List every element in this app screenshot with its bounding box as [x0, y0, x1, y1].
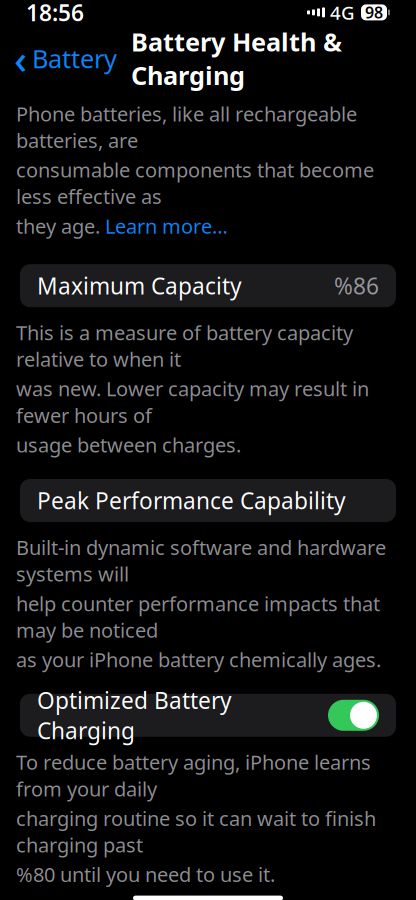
- staticText: %86: [334, 271, 379, 301]
- staticText: was new. Lower capacity may result in fe…: [16, 375, 369, 428]
- staticText: charging routine so it can wait to finis…: [16, 805, 376, 858]
- staticText: Battery: [32, 42, 117, 75]
- staticText: 4G: [330, 0, 355, 25]
- staticText: To reduce battery aging, iPhone learns f…: [16, 749, 371, 802]
- staticText: Learn more…: [105, 213, 228, 239]
- staticText: Peak Performance Capability: [37, 485, 346, 515]
- staticText: usage between charges.: [16, 431, 241, 458]
- button[interactable]: Learn more…: [105, 213, 228, 239]
- staticText: as your iPhone battery chemically ages.: [16, 646, 381, 673]
- staticText: 18:56: [26, 0, 84, 27]
- staticText: Maximum Capacity: [37, 271, 242, 301]
- button[interactable]: Peak Performance Capability: [20, 479, 396, 522]
- staticText: consumable components that become less e…: [16, 156, 374, 210]
- staticText: Optimized Battery Charging: [37, 685, 232, 745]
- staticText: they age.: [16, 213, 105, 239]
- staticText: ‹: [14, 32, 27, 85]
- button[interactable]: Optimized Battery Charging: [328, 700, 379, 731]
- staticText: %80 until you need to use it.: [16, 861, 275, 888]
- staticText: This is a measure of battery capacity re…: [16, 319, 353, 372]
- staticText: Phone batteries, like all rechargeable b…: [16, 100, 357, 153]
- staticText: help counter performance impacts that ma…: [16, 590, 380, 643]
- staticText: 98: [365, 2, 383, 23]
- staticText: Built-in dynamic software and hardware s…: [16, 534, 386, 587]
- staticText: Battery Health & Charging: [131, 25, 342, 92]
- button[interactable]: Maximum Capacity: [20, 264, 396, 307]
- button[interactable]: ‹: [14, 28, 117, 89]
